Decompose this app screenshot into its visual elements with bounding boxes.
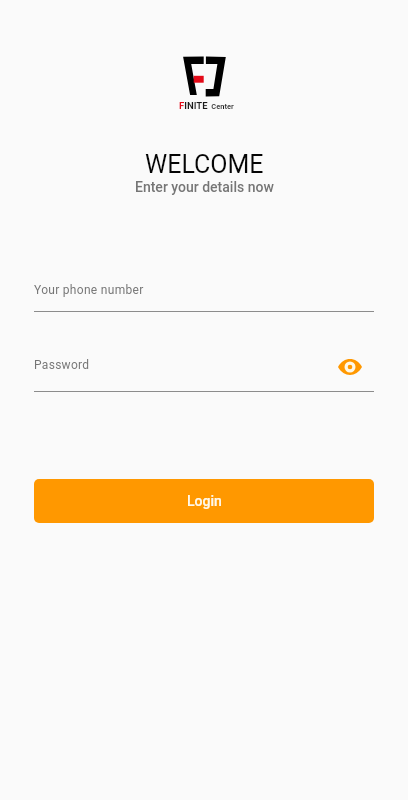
staticText: Your phone number	[34, 283, 144, 297]
staticText: Enter your details now	[135, 179, 274, 195]
button[interactable]: Login	[34, 479, 374, 523]
button[interactable]: Your phone number	[34, 283, 374, 312]
staticText: Login	[187, 493, 222, 509]
button[interactable]: Password	[34, 358, 374, 392]
staticText: FINITE Center	[179, 100, 234, 111]
button[interactable]: Show password	[330, 347, 369, 386]
staticText: WELCOME	[145, 150, 264, 179]
staticText: Password	[34, 358, 90, 372]
